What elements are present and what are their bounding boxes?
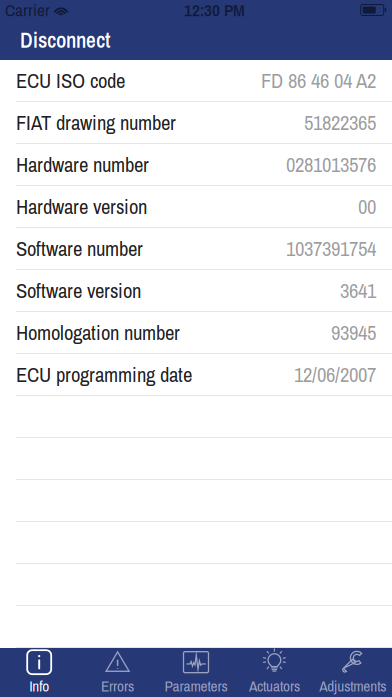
button[interactable]: Parameters xyxy=(157,648,235,697)
staticText: ECU ISO code xyxy=(16,67,125,94)
button[interactable]: Disconnect xyxy=(16,20,115,60)
staticText: 12/06/2007 xyxy=(294,361,376,388)
staticText: 12:30 PM xyxy=(184,0,245,22)
staticText: Errors xyxy=(101,676,134,696)
staticText: Adjustments xyxy=(319,676,386,696)
staticText: Software version xyxy=(16,277,141,304)
staticText: Carrier xyxy=(5,0,50,22)
button[interactable]: Actuators xyxy=(235,648,314,697)
staticText: 93945 xyxy=(331,319,376,346)
button[interactable]: Info xyxy=(0,648,78,697)
staticText: 00 xyxy=(358,193,376,220)
staticText: Actuators xyxy=(249,676,300,696)
staticText: 0281013576 xyxy=(286,151,376,178)
button[interactable]: Adjustments xyxy=(314,648,392,697)
staticText: 3641 xyxy=(340,277,376,304)
staticText: Parameters xyxy=(164,676,227,696)
staticText: Software number xyxy=(16,235,143,262)
staticText: Hardware number xyxy=(16,151,149,178)
staticText: FD 86 46 04 A2 xyxy=(261,67,376,94)
staticText: FIAT drawing number xyxy=(16,109,176,136)
staticText: Hardware version xyxy=(16,193,147,220)
staticText: Info xyxy=(29,676,49,696)
staticText: Disconnect xyxy=(20,26,111,54)
button[interactable]: Errors xyxy=(78,648,157,697)
staticText: 1037391754 xyxy=(286,235,376,262)
staticText: ECU programming date xyxy=(16,361,192,388)
staticText: 51822365 xyxy=(304,109,376,136)
staticText: Homologation number xyxy=(16,319,180,346)
